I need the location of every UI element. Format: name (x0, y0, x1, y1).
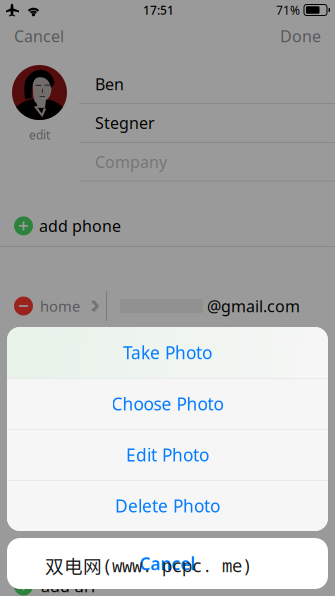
button[interactable]: Stegner (79, 104, 335, 143)
staticText: Ben (95, 73, 124, 95)
button[interactable]: Ben (79, 65, 335, 104)
button[interactable]: Done (280, 19, 335, 53)
staticText: add phone (39, 215, 121, 236)
staticText: @gmail.com (207, 295, 300, 317)
button[interactable]: Cancel (0, 19, 64, 53)
staticText: 双电网 (45, 552, 102, 579)
staticText: Cancel (139, 552, 195, 575)
button[interactable]: Company (79, 143, 335, 181)
staticText: Cancel (14, 25, 64, 47)
button[interactable]: add phone (0, 205, 335, 246)
button[interactable]: Take Photo (7, 327, 328, 378)
staticText: edit (29, 127, 50, 143)
button[interactable]: Edit Photo (7, 429, 328, 480)
staticText: 17:51 (143, 2, 174, 18)
staticText: Company (95, 151, 167, 172)
staticText: Take Photo (123, 341, 212, 364)
staticText: home (40, 296, 80, 316)
button[interactable]: Choose Photo (7, 378, 328, 429)
button[interactable]: home (0, 288, 335, 324)
staticText: add url (41, 575, 95, 596)
button[interactable]: Cancel (7, 538, 328, 589)
staticText: Stegner (95, 112, 155, 133)
staticText: Choose Photo (111, 392, 223, 415)
button[interactable]: Delete Photo (7, 480, 328, 531)
staticText: (www. pcpc. me) (102, 554, 252, 577)
staticText: Done (280, 25, 321, 47)
staticText: 71% (276, 2, 300, 18)
staticText: Delete Photo (115, 494, 220, 517)
staticText: Edit Photo (126, 443, 209, 466)
